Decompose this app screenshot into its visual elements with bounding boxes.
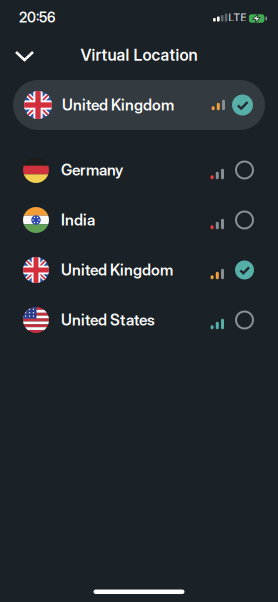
button[interactable]: United States [0,295,278,345]
staticText: LTE [228,11,246,24]
staticText: 20:56 [19,9,55,26]
button[interactable]: United Kingdom [13,80,265,130]
button[interactable]: India [0,195,278,245]
button[interactable]: United Kingdom [0,245,278,295]
staticText: United Kingdom [62,96,174,114]
staticText: United Kingdom [61,261,173,279]
button[interactable] [0,41,33,69]
staticText: Germany [61,161,123,179]
button[interactable]: Germany [0,145,278,195]
staticText: United States [61,311,155,329]
staticText: Virtual Location [80,45,197,65]
staticText: India [61,211,95,229]
